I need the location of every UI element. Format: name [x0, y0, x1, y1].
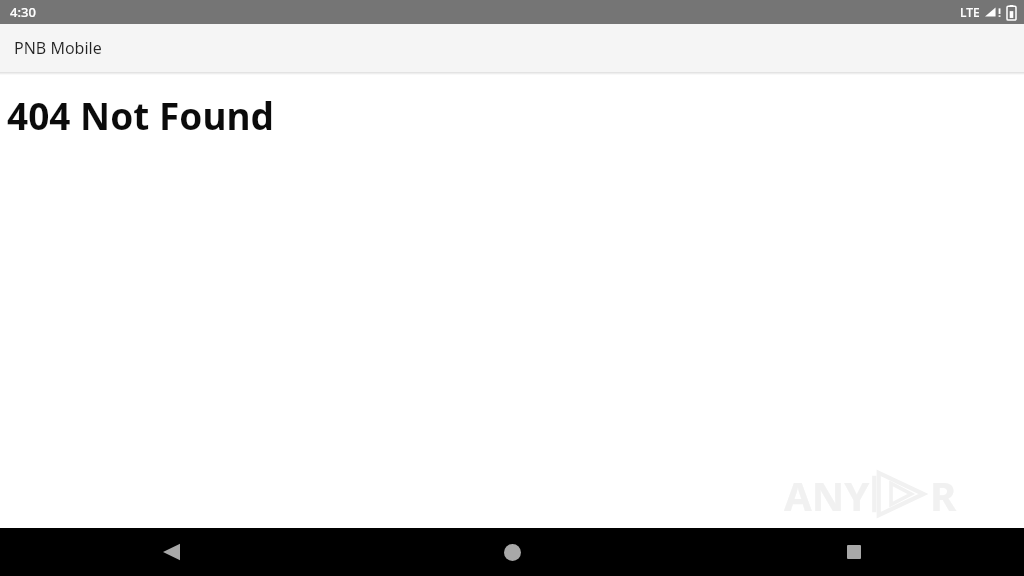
staticText: ANY [784, 468, 870, 520]
staticText: PNB Mobile [14, 37, 102, 59]
button[interactable]: Back [0, 528, 342, 576]
staticText: 404 Not Found [7, 90, 274, 140]
staticText: RUN [930, 468, 984, 520]
staticText: 4:30 [10, 3, 36, 21]
staticText: LTE [960, 4, 980, 20]
button[interactable]: Recent apps [683, 528, 1024, 576]
button[interactable]: Home [342, 528, 683, 576]
